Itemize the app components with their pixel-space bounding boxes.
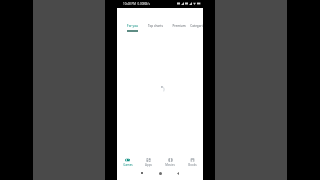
button[interactable]: Apps [138,155,159,169]
button[interactable]: Games [117,155,138,169]
button[interactable]: Books [181,155,203,169]
button[interactable]: Back [174,169,182,177]
staticText: For you [127,24,138,28]
staticText: Movies [165,163,175,167]
button[interactable]: Categories [190,0,203,32]
button[interactable]: Home [156,169,164,177]
staticText: Top charts [148,24,163,28]
staticText: Premium [172,24,186,28]
button[interactable]: For you [121,0,144,32]
button[interactable]: Top charts [144,0,167,32]
staticText: Games [123,163,133,167]
button[interactable]: Premium [167,0,190,32]
button[interactable]: Movies [159,155,181,169]
staticText: Books [188,163,197,167]
button[interactable]: Recent apps [138,169,146,177]
staticText: Categories [190,24,203,28]
staticText: 10:48 PM 0.00KB/s [123,2,150,6]
staticText: Apps [145,163,152,167]
